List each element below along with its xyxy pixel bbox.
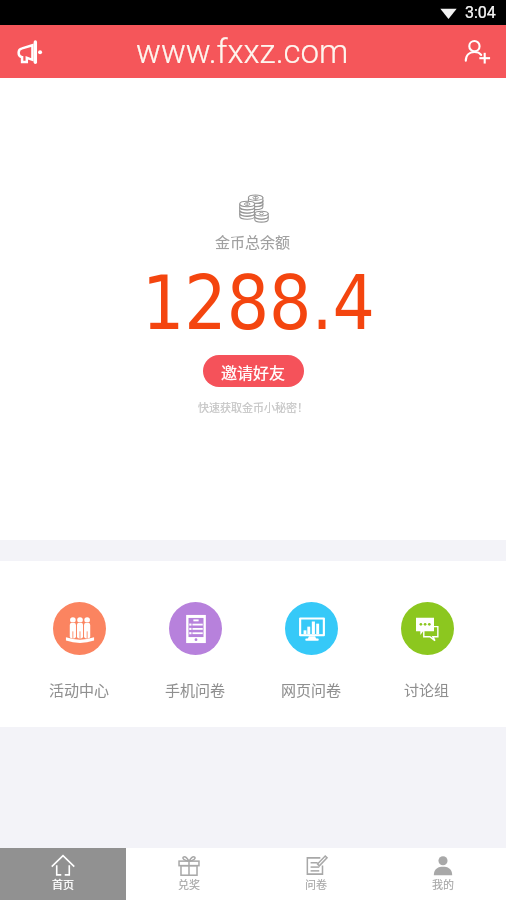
button[interactable]: Add friend [448, 25, 506, 78]
button[interactable]: 讨论组 [369, 602, 485, 701]
button[interactable]: 网页问卷 [253, 602, 369, 701]
button[interactable]: 邀请好友 [203, 355, 304, 387]
staticText: 首页 [52, 876, 74, 892]
staticText: 活动中心 [49, 679, 110, 701]
button[interactable]: Announcements [0, 25, 58, 78]
button[interactable]: 手机问卷 [137, 602, 253, 701]
button[interactable]: 首页 [0, 848, 126, 900]
button[interactable]: 活动中心 [21, 602, 137, 701]
staticText: 我的 [432, 876, 454, 892]
staticText: 邀请好友 [221, 360, 286, 383]
button[interactable]: 问卷 [252, 848, 379, 900]
staticText: 网页问卷 [281, 679, 342, 701]
staticText: www.fxxz.com [136, 32, 349, 71]
staticText: 手机问卷 [165, 679, 226, 701]
staticText: 讨论组 [404, 679, 450, 701]
staticText: 问卷 [305, 876, 327, 892]
staticText: 兑奖 [178, 876, 200, 892]
button[interactable]: 我的 [379, 848, 506, 900]
staticText: 金币总余额 [215, 231, 291, 253]
staticText: 快速获取金币小秘密！ [198, 399, 308, 415]
staticText: 3:04 [465, 3, 496, 22]
button[interactable]: 兑奖 [126, 848, 252, 900]
staticText: 1288.4 [142, 260, 375, 346]
